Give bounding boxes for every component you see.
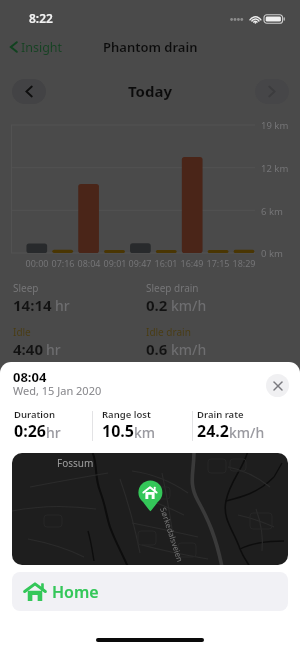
staticText: 4:40 [13, 339, 43, 359]
staticText: 17:15 [204, 257, 232, 269]
staticText: 00:00 [23, 257, 51, 269]
staticText: 19 km [261, 119, 289, 132]
staticText: 24.2 [197, 420, 229, 442]
staticText: Idle [13, 325, 31, 339]
staticText: 0.2 [146, 295, 168, 315]
staticText: Drain rate [197, 408, 244, 421]
staticText: 14:14 [13, 295, 52, 315]
button[interactable]: Previous day [12, 79, 46, 104]
staticText: 09:01 [101, 257, 129, 269]
staticText: Today [128, 81, 173, 101]
staticText: Sleep drain [146, 281, 199, 295]
staticText: 6 km [261, 205, 283, 218]
staticText: Insight [21, 39, 63, 56]
staticText: Range lost [102, 408, 151, 421]
staticText: 16:49 [178, 257, 206, 269]
button[interactable]: Close [266, 374, 289, 397]
staticText: 07:16 [49, 257, 77, 269]
staticText: hr [46, 423, 61, 442]
staticText: 0:26 [14, 420, 46, 442]
staticText: Home [52, 581, 99, 603]
staticText: 08:04 [75, 257, 103, 269]
staticText: 08:04 [13, 368, 47, 386]
staticText: km [134, 423, 156, 442]
staticText: Wed, 15 Jan 2020 [13, 383, 102, 398]
staticText: 12 km [261, 162, 289, 175]
staticText: 18:29 [230, 257, 258, 269]
staticText: 8:22 [29, 10, 53, 26]
staticText: Idle drain [146, 325, 191, 339]
staticText: 16:01 [152, 257, 180, 269]
staticText: km/h [229, 423, 265, 442]
staticText: hr [46, 340, 61, 359]
staticText: hr [55, 296, 70, 315]
staticText: 0 km [261, 247, 283, 260]
button[interactable]: Map [12, 453, 288, 565]
staticText: Sleep [13, 281, 39, 295]
staticText: 0.6 [146, 339, 168, 359]
staticText: Fossum [57, 456, 94, 470]
staticText: 09:47 [126, 257, 154, 269]
staticText: 10.5 [102, 420, 134, 442]
staticText: km/h [171, 340, 207, 359]
button[interactable]: Insight [8, 32, 63, 62]
staticText: km/h [171, 296, 207, 315]
staticText: Phantom drain [103, 38, 198, 56]
staticText: Duration [14, 408, 55, 421]
staticText: Sørkedalsveien [158, 506, 186, 563]
